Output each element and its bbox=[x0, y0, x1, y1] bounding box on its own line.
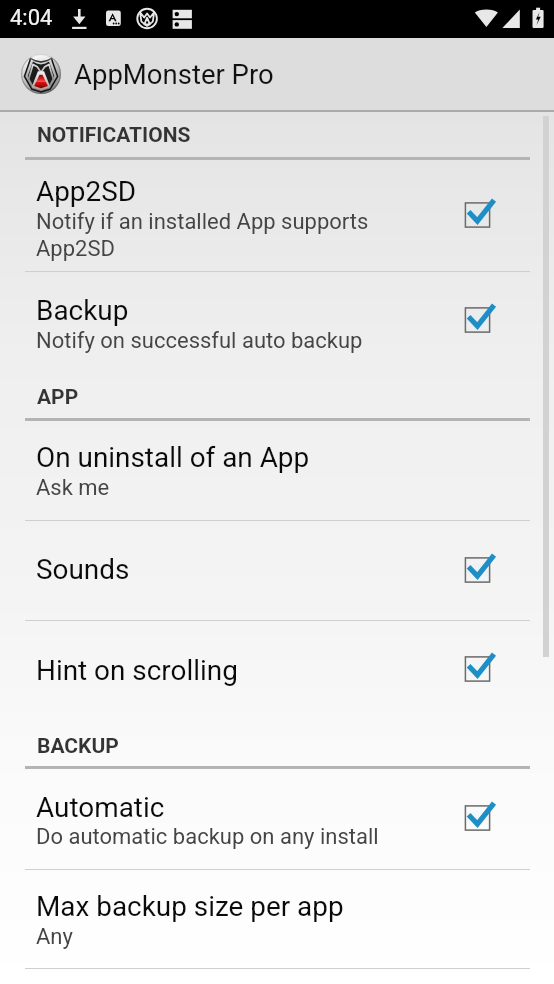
button[interactable]: On uninstall of an App bbox=[0, 420, 554, 520]
button[interactable]: App2SD bbox=[0, 161, 554, 271]
button[interactable]: NOTIFICATIONS bbox=[0, 115, 554, 157]
staticText: Max backup size per app bbox=[36, 890, 436, 923]
staticText: Notify if an installed App supports App2… bbox=[36, 209, 376, 261]
button[interactable]: Max backup size per app bbox=[0, 870, 554, 968]
staticText: Hint on scrolling bbox=[36, 654, 436, 687]
button[interactable]: Toggle Hint on scrolling bbox=[450, 643, 502, 695]
button[interactable]: AppMonster Pro bbox=[0, 38, 554, 110]
staticText: Do automatic backup on any install bbox=[36, 824, 456, 850]
button[interactable]: APP bbox=[0, 376, 554, 418]
button[interactable]: Toggle Sounds bbox=[450, 544, 502, 596]
staticText: On uninstall of an App bbox=[36, 441, 436, 474]
staticText: Any bbox=[36, 924, 496, 950]
button[interactable]: Toggle Automatic bbox=[450, 792, 502, 844]
staticText: Ask me bbox=[36, 475, 496, 501]
button[interactable]: Toggle Backup bbox=[450, 294, 502, 346]
staticText: 4:04 bbox=[10, 5, 53, 31]
button[interactable]: Toggle App2SD bbox=[450, 189, 502, 241]
staticText: Sounds bbox=[36, 553, 436, 586]
button[interactable]: BACKUP bbox=[0, 724, 554, 766]
button[interactable]: Sounds bbox=[0, 521, 554, 620]
staticText: Notify on successful auto backup bbox=[36, 328, 496, 354]
staticText: NOTIFICATIONS bbox=[37, 123, 191, 148]
button[interactable]: Hint on scrolling bbox=[0, 621, 554, 716]
staticText: Backup bbox=[36, 294, 436, 327]
button[interactable]: Backup bbox=[0, 272, 554, 368]
staticText: App2SD bbox=[36, 175, 436, 208]
button[interactable]: Automatic bbox=[0, 771, 554, 869]
staticText: AppMonster Pro bbox=[74, 58, 274, 90]
staticText: APP bbox=[37, 385, 79, 410]
staticText: Automatic bbox=[36, 791, 436, 824]
staticText: BACKUP bbox=[37, 734, 119, 759]
